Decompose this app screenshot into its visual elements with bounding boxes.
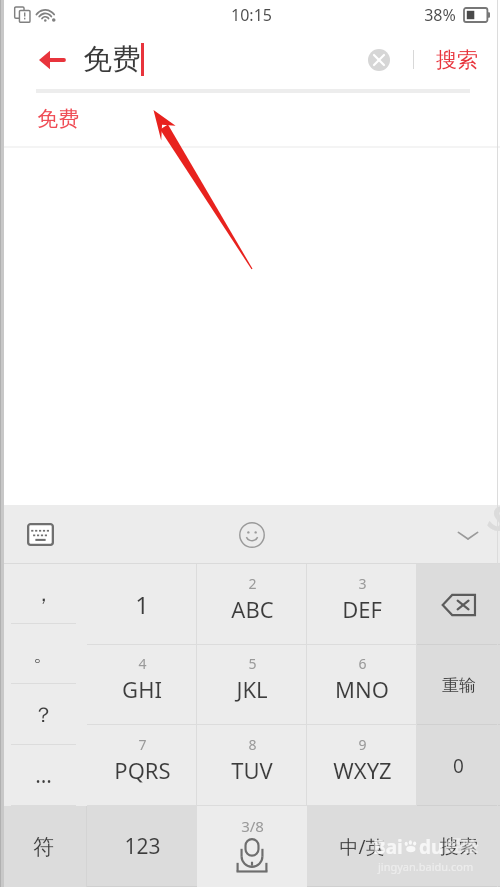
- button[interactable]: 4: [87, 645, 197, 725]
- staticText: ？: [33, 702, 54, 728]
- staticText: ，: [33, 581, 54, 607]
- button[interactable]: 符: [0, 806, 87, 887]
- button[interactable]: Clear: [357, 38, 401, 82]
- button[interactable]: ？: [0, 684, 87, 745]
- button[interactable]: Backspace: [417, 564, 500, 645]
- staticText: 2: [248, 574, 257, 593]
- button[interactable]: 5: [197, 645, 307, 725]
- button[interactable]: Keyboard layout: [0, 505, 87, 564]
- button[interactable]: 免费: [0, 94, 500, 148]
- staticText: 免费: [37, 106, 79, 132]
- button[interactable]: 重输: [417, 645, 500, 725]
- staticText: MNO: [335, 674, 389, 704]
- staticText: WXYZ: [333, 755, 392, 785]
- button[interactable]: 3: [307, 564, 417, 645]
- button[interactable]: Voice input: [197, 806, 307, 887]
- staticText: 0: [453, 753, 464, 779]
- button[interactable]: Back: [0, 31, 83, 88]
- button[interactable]: 123: [87, 806, 197, 887]
- button[interactable]: Hide keyboard: [417, 505, 500, 564]
- staticText: S: [481, 493, 500, 543]
- staticText: 9: [358, 735, 367, 754]
- staticText: 搜索: [440, 835, 478, 859]
- staticText: 免费: [83, 41, 141, 78]
- staticText: DEF: [342, 594, 382, 624]
- staticText: 10:15: [231, 4, 272, 26]
- staticText: TUV: [231, 755, 273, 785]
- button[interactable]: 搜索: [414, 31, 500, 88]
- staticText: du: [419, 834, 444, 860]
- staticText: ABC: [231, 594, 274, 624]
- button[interactable]: …: [0, 745, 87, 806]
- staticText: 重输: [442, 675, 476, 696]
- button[interactable]: 。: [0, 624, 87, 684]
- button[interactable]: ，: [0, 564, 87, 624]
- staticText: 中/英: [339, 834, 385, 860]
- button[interactable]: 2: [197, 564, 307, 645]
- staticText: JKL: [236, 674, 268, 704]
- staticText: 123: [124, 832, 161, 861]
- staticText: 经验: [446, 837, 478, 857]
- button[interactable]: 中/英: [307, 806, 417, 887]
- staticText: 5: [248, 654, 257, 673]
- button[interactable]: 8: [197, 725, 307, 806]
- staticText: 8: [248, 735, 257, 754]
- staticText: 搜索: [436, 47, 478, 73]
- staticText: …: [35, 761, 52, 790]
- staticText: 1: [135, 588, 149, 621]
- staticText: jingyan.baidu.com: [378, 859, 474, 874]
- staticText: 3: [358, 574, 367, 593]
- staticText: PQRS: [114, 755, 171, 785]
- button[interactable]: 9: [307, 725, 417, 806]
- staticText: GHI: [122, 674, 162, 704]
- button[interactable]: 0: [417, 725, 500, 806]
- staticText: 3/8: [241, 816, 264, 836]
- button[interactable]: Emoji: [87, 505, 417, 564]
- staticText: 。: [33, 641, 54, 667]
- button[interactable]: 搜索: [417, 806, 500, 887]
- staticText: 符: [33, 834, 54, 860]
- staticText: Bai: [373, 834, 403, 860]
- staticText: 38%: [424, 4, 456, 26]
- button[interactable]: 1: [87, 564, 197, 645]
- button[interactable]: 6: [307, 645, 417, 725]
- button[interactable]: 7: [87, 725, 197, 806]
- staticText: 7: [138, 735, 147, 754]
- staticText: 4: [138, 654, 147, 673]
- staticText: 6: [358, 654, 367, 673]
